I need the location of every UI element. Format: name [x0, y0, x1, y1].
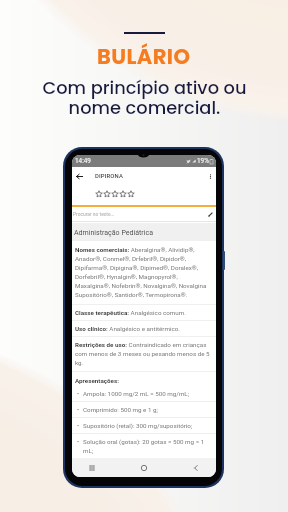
button[interactable]: Back — [189, 461, 203, 475]
staticText: Uso clínico: Analgésico e antitérmico. — [75, 325, 180, 332]
staticText: Com princípio ativo ou nome comercial. — [42, 75, 247, 120]
staticText: 14:49 — [75, 157, 91, 165]
staticText: • — [77, 406, 80, 413]
button[interactable]: Rate 3 stars — [111, 190, 119, 198]
staticText: Restrições de uso: Contraindicado em cri… — [75, 341, 211, 367]
button[interactable]: Rate 2 stars — [103, 190, 111, 198]
button[interactable]: Rate 4 stars — [119, 190, 127, 198]
button[interactable]: Home — [137, 461, 151, 475]
button[interactable]: More options — [205, 167, 216, 185]
staticText: Comprimido: 500 mg e 1 g; — [83, 406, 158, 413]
staticText: • — [77, 438, 80, 445]
staticText: Supositório (retal): 300 mg/supositório; — [83, 422, 193, 429]
staticText: • — [77, 390, 80, 397]
staticText: Nomes comerciais: Aberalgina®, Alividip®… — [75, 246, 211, 299]
staticText: BULÁRIO — [97, 42, 191, 71]
staticText: Classe terapêutica: Analgésico comum. — [75, 309, 186, 316]
staticText: 19% — [197, 157, 209, 165]
button[interactable]: Recent apps — [85, 461, 99, 475]
staticText: DIPIRONA — [95, 173, 124, 180]
button[interactable]: Rate 1 stars — [95, 190, 103, 198]
button[interactable]: Back — [72, 167, 86, 185]
staticText: • — [77, 422, 80, 429]
button[interactable]: Rate 5 stars — [127, 190, 135, 198]
other: Edit — [208, 212, 213, 217]
staticText: Solução oral (gotas): 20 gotas = 500 mg … — [83, 438, 211, 454]
staticText: Ampola: 1000 mg/2 mL = 500 mg/mL; — [83, 390, 190, 397]
staticText: Procurar no texto... — [73, 211, 115, 217]
staticText: Apresentações: — [75, 377, 119, 384]
staticText: Administração Pediátrica — [74, 228, 153, 236]
